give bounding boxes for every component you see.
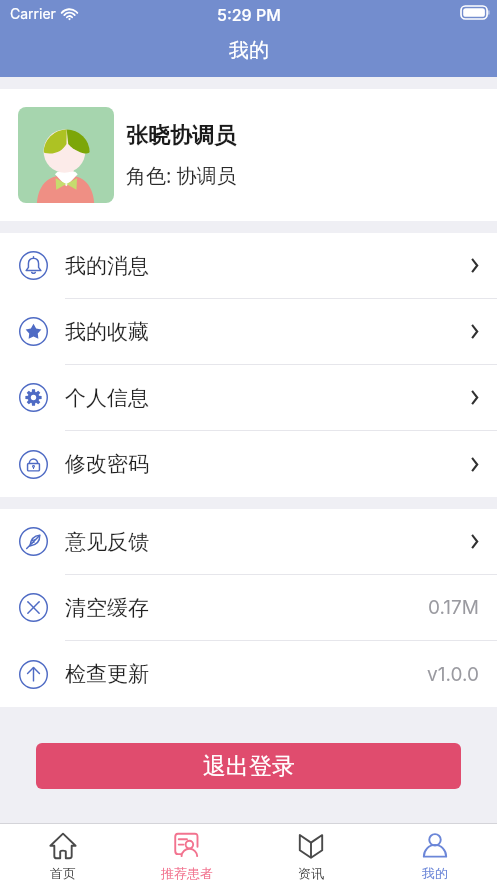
button[interactable]: 资讯 [249, 824, 373, 883]
staticText: 张晓协调员 [126, 122, 236, 150]
button[interactable]: 个人信息 [0, 365, 497, 431]
staticText: 清空缓存 [65, 595, 149, 621]
staticText: 退出登录 [203, 752, 295, 781]
staticText: 我的消息 [65, 253, 149, 279]
button[interactable]: 推荐患者 [125, 824, 249, 883]
button[interactable]: 首页 [0, 824, 125, 883]
button[interactable]: 意见反馈 [0, 509, 497, 575]
button[interactable]: 我的收藏 [0, 299, 497, 365]
staticText: 首页 [50, 865, 76, 881]
staticText: Carrier [10, 5, 56, 22]
staticText: 资讯 [298, 865, 324, 881]
staticText: 检查更新 [65, 661, 149, 687]
staticText: v1.0.0 [427, 663, 479, 686]
staticText: 个人信息 [65, 385, 149, 411]
staticText: 我的 [229, 38, 269, 63]
button[interactable]: 修改密码 [0, 431, 497, 497]
button[interactable]: 检查更新 [0, 641, 497, 707]
staticText: 0.17M [428, 596, 479, 619]
button[interactable]: 我的消息 [0, 233, 497, 299]
staticText: 5:29 PM [217, 5, 281, 24]
button[interactable]: 我的 [373, 824, 497, 883]
staticText: 角色: 协调员 [126, 162, 237, 189]
staticText: 我的收藏 [65, 319, 149, 345]
staticText: 修改密码 [65, 451, 149, 477]
button[interactable]: 退出登录 [36, 743, 461, 789]
staticText: 推荐患者 [161, 865, 213, 881]
button[interactable]: 清空缓存 [0, 575, 497, 641]
staticText: 意见反馈 [65, 529, 149, 555]
staticText: 我的 [422, 865, 448, 881]
